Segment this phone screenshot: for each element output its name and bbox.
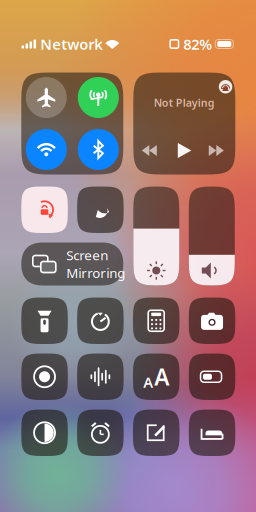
button[interactable]: Screen <box>21 242 123 285</box>
button[interactable]: Flashlight <box>21 297 68 344</box>
button[interactable]: Camera <box>189 297 235 344</box>
button[interactable]: Do Not Disturb <box>77 186 124 233</box>
staticText: 82% <box>183 34 212 54</box>
staticText: Network <box>40 34 103 54</box>
button[interactable]: Sleep Mode <box>189 409 235 456</box>
button[interactable]: Volume <box>189 186 235 285</box>
staticText: Not Playing <box>154 95 215 110</box>
button[interactable]: Orientation Lock <box>21 186 68 233</box>
button[interactable]: Dark Mode <box>21 409 68 456</box>
button[interactable]: Text Size <box>133 353 179 400</box>
button[interactable]: Fast forward <box>202 138 231 163</box>
button[interactable]: Screen Recording <box>21 353 68 400</box>
button[interactable]: Calculator <box>133 297 179 344</box>
button[interactable]: Wi-Fi <box>26 129 67 170</box>
staticText: Mirroring <box>66 264 125 282</box>
button[interactable]: Sound Recognition <box>77 353 124 400</box>
staticText: Screen <box>66 246 108 264</box>
button[interactable]: Play <box>171 136 199 165</box>
button[interactable]: Airplane Mode <box>26 77 67 118</box>
button[interactable]: Alarm <box>77 409 124 456</box>
button[interactable]: Bluetooth <box>78 129 119 170</box>
button[interactable]: Rewind <box>135 138 164 163</box>
button[interactable]: Low Power Mode <box>189 353 235 400</box>
staticText: A <box>143 372 153 392</box>
button[interactable]: Brightness <box>133 186 179 285</box>
button[interactable]: Cellular Data <box>78 77 119 118</box>
button[interactable]: Timer <box>77 297 124 344</box>
staticText: A <box>154 362 169 392</box>
button[interactable]: AirPlay <box>214 75 237 98</box>
button[interactable]: Notes <box>133 409 179 456</box>
